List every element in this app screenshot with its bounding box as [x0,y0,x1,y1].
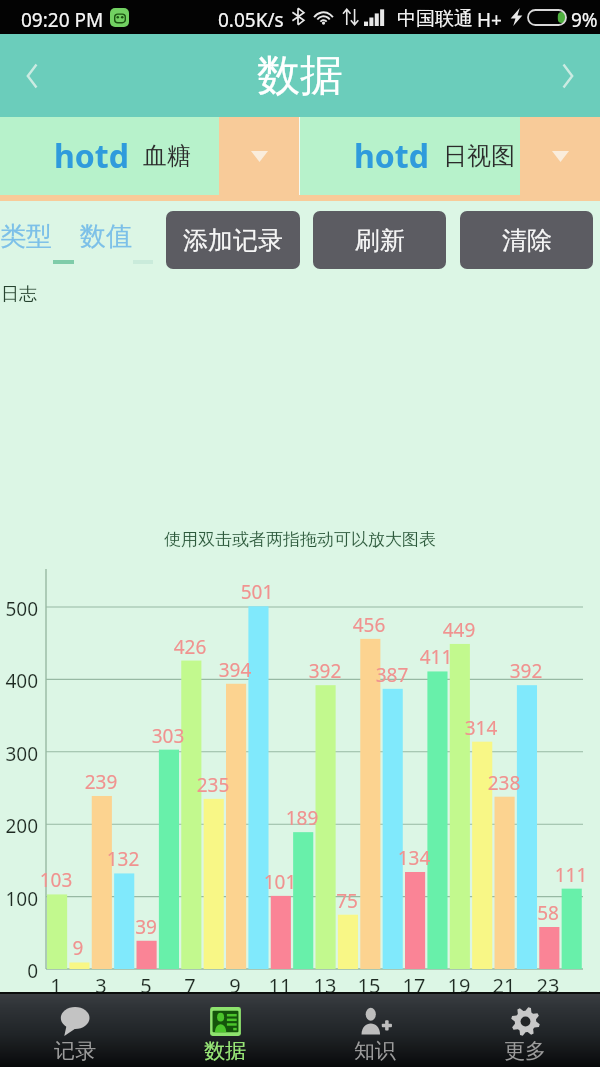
staticText: 血糖 [143,141,191,171]
staticText: 19 [441,972,477,999]
staticText: 392 [502,658,550,684]
staticText: 17 [396,972,432,999]
staticText: H+ [477,7,502,33]
staticText: 9 [54,935,102,961]
staticText: 9% [571,7,598,33]
staticText: 添加记录 [183,225,283,256]
staticText: 21 [486,972,522,999]
staticText: 0.05K/s [218,7,284,33]
button[interactable]: 数值 [80,220,158,272]
staticText: 132 [99,846,147,872]
staticText: 456 [345,612,393,638]
staticText: 09:20 PM [21,7,104,33]
staticText: 更多 [504,1038,546,1064]
staticText: 426 [166,634,214,660]
staticText: 101 [256,869,304,895]
staticText: 411 [412,644,460,670]
staticText: 使用双击或者两指拖动可以放大图表 [0,529,600,550]
staticText: 303 [144,723,192,749]
staticText: hotd [54,134,129,178]
staticText: 类型 [0,220,52,253]
staticText: 111 [547,862,595,888]
staticText: 103 [32,867,80,893]
staticText: 3 [83,972,119,999]
button[interactable]: 刷新 [313,211,446,269]
staticText: 11 [262,972,298,999]
staticText: hotd [354,134,429,178]
button[interactable]: 添加记录 [166,211,300,269]
staticText: 100 [0,886,38,912]
button[interactable]: 更多 [450,994,600,1067]
staticText: 300 [0,741,38,767]
staticText: 1 [38,972,74,999]
staticText: 134 [390,845,438,871]
staticText: 501 [233,579,281,605]
staticText: 清除 [502,225,552,256]
staticText: 449 [435,617,483,643]
staticText: 13 [307,972,343,999]
staticText: 9 [217,972,253,999]
button[interactable]: hotd [300,117,600,195]
button[interactable]: Next [542,50,594,102]
staticText: 23 [530,972,566,999]
staticText: 387 [368,662,416,688]
staticText: 500 [0,596,38,622]
button[interactable]: 类型 [0,220,74,272]
staticText: 394 [211,657,259,683]
staticText: 392 [301,658,349,684]
staticText: 200 [0,813,38,839]
staticText: 39 [122,914,170,940]
staticText: 数值 [80,220,132,253]
staticText: 189 [278,805,326,831]
staticText: 数据 [257,49,343,103]
staticText: 238 [480,770,528,796]
button[interactable]: hotd [0,117,299,195]
staticText: 刷新 [355,225,405,256]
staticText: 记录 [54,1038,96,1064]
button[interactable]: 数据 [150,994,300,1067]
staticText: 58 [524,900,572,926]
staticText: 400 [0,668,38,694]
button[interactable]: 知识 [300,994,450,1067]
staticText: 75 [323,888,371,914]
staticText: 239 [77,769,125,795]
staticText: 中国联通 [397,7,473,31]
button[interactable]: 记录 [0,994,150,1067]
staticText: 日视图 [443,141,515,171]
staticText: 0 [0,958,38,984]
staticText: 7 [172,972,208,999]
staticText: 314 [457,715,505,741]
staticText: 知识 [354,1038,396,1064]
staticText: 15 [351,972,387,999]
button[interactable]: Previous [6,50,58,102]
button[interactable]: 清除 [460,211,593,269]
staticText: 数据 [204,1038,246,1064]
staticText: 5 [128,972,164,999]
staticText: 日志 [1,283,37,306]
staticText: 235 [189,772,237,798]
